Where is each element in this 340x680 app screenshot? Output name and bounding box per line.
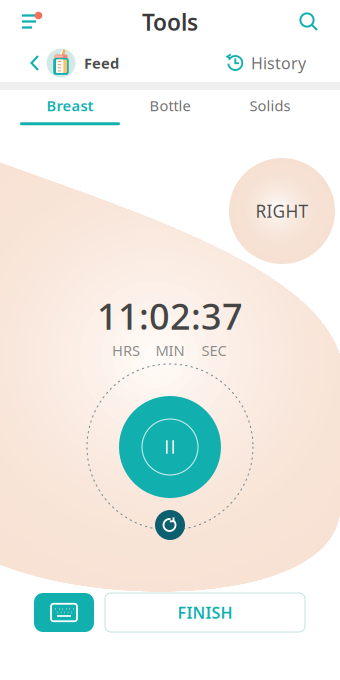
button[interactable]: Menu: [16, 7, 46, 37]
button[interactable]: Reset timer: [153, 508, 187, 542]
staticText: MIN: [155, 341, 184, 360]
button[interactable]: Bottle: [120, 90, 220, 130]
staticText: RIGHT: [255, 199, 308, 222]
staticText: Tools: [142, 7, 198, 37]
staticText: SEC: [201, 341, 226, 360]
staticText: History: [251, 52, 306, 74]
staticText: Feed: [84, 53, 119, 73]
button[interactable]: Search: [294, 7, 324, 37]
button[interactable]: Manual entry: [34, 593, 94, 632]
staticText: Breast: [46, 96, 93, 115]
staticText: FINISH: [177, 602, 232, 623]
staticText: Solids: [249, 96, 290, 115]
staticText: 11:02:37: [97, 292, 243, 340]
staticText: HRS: [112, 341, 140, 360]
button[interactable]: FINISH: [105, 593, 305, 632]
button[interactable]: Breast: [20, 90, 120, 130]
button[interactable]: Back to Feed: [28, 46, 119, 80]
button[interactable]: History: [225, 48, 306, 78]
button[interactable]: Solids: [220, 90, 320, 130]
staticText: Bottle: [149, 96, 190, 115]
